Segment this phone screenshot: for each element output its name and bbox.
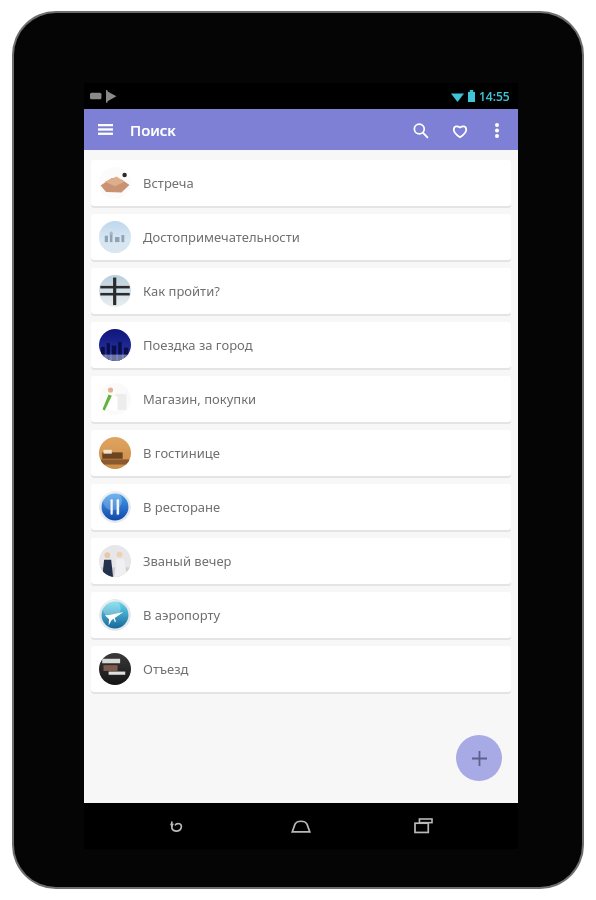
button[interactable]: Отъезд [91,646,511,692]
button[interactable]: Как пройти? [91,268,511,314]
button[interactable]: Home [274,806,328,846]
button[interactable]: В гостинице [91,430,511,476]
staticText: В гостинице [143,444,220,462]
button[interactable]: Магазин, покупки [91,376,511,422]
button[interactable]: В аэропорту [91,592,511,638]
staticText: Поездка за город [143,336,253,354]
staticText: Поиск [130,120,176,140]
button[interactable]: Search [400,110,440,150]
staticText: Достопримечательности [143,228,300,246]
staticText: Как пройти? [143,282,220,300]
button[interactable]: Встреча [91,160,511,206]
button[interactable]: Back [152,806,206,846]
button[interactable]: More options [480,113,514,147]
staticText: В ресторане [143,498,221,516]
staticText: Магазин, покупки [143,390,257,408]
button[interactable]: Званый вечер [91,538,511,584]
button[interactable]: Достопримечательности [91,214,511,260]
staticText: Званый вечер [143,552,232,570]
button[interactable]: Поездка за город [91,322,511,368]
button[interactable]: Add [456,735,502,781]
button[interactable]: Favorites [440,110,480,150]
staticText: Отъезд [143,660,189,678]
button[interactable]: Recent apps [396,806,450,846]
staticText: 14:55 [479,88,510,104]
staticText: В аэропорту [143,606,221,624]
button[interactable]: В ресторане [91,484,511,530]
staticText: Встреча [143,174,194,192]
button[interactable]: Open navigation drawer [84,109,126,150]
